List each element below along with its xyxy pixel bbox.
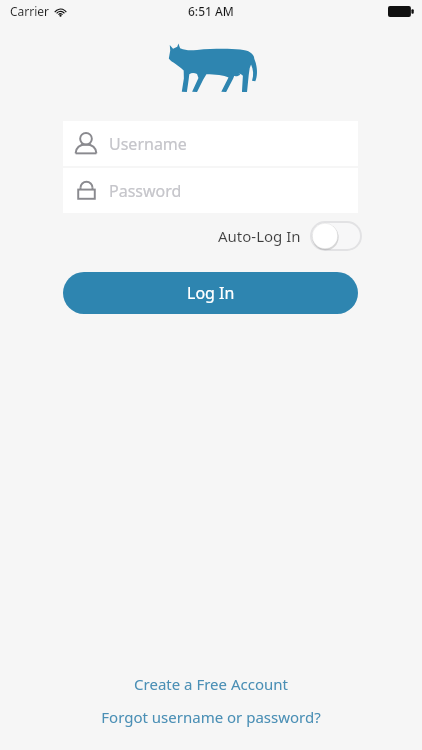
button[interactable]: Auto-Log In toggle	[311, 222, 361, 250]
button[interactable]: Log In	[63, 272, 358, 314]
other: Cow logo	[166, 38, 260, 96]
button[interactable]: Forgot username or password?	[50, 703, 372, 731]
button[interactable]: Auto-Log In	[218, 220, 361, 252]
staticText: Password	[109, 180, 182, 202]
staticText: Create a Free Account	[134, 674, 288, 694]
staticText: Username	[109, 133, 187, 155]
button[interactable]: Password	[63, 168, 358, 213]
staticText: 6:51 AM	[188, 3, 234, 19]
staticText: Auto-Log In	[218, 226, 301, 246]
button[interactable]: Username	[63, 121, 358, 166]
button[interactable]: Create a Free Account	[60, 670, 362, 698]
staticText: Carrier	[10, 3, 50, 19]
staticText: Forgot username or password?	[101, 707, 321, 727]
staticText: Log In	[187, 282, 235, 304]
